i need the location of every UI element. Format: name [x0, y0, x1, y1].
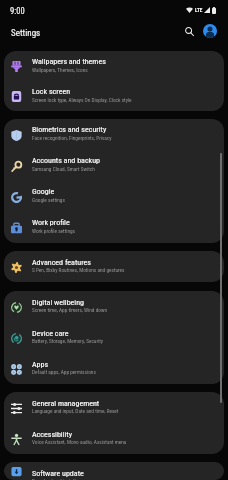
button[interactable]: Google [4, 181, 224, 212]
staticText: Advanced features [32, 258, 91, 267]
button[interactable]: Lock screen [4, 81, 224, 111]
button[interactable]: Advanced features [4, 251, 224, 282]
staticText: LTE [195, 7, 203, 13]
staticText: Google settings [32, 197, 65, 203]
staticText: Screen time, App timers, Wind down [32, 307, 108, 313]
staticText: Work profile settings [32, 228, 76, 234]
staticText: Accounts and backup [32, 156, 101, 165]
staticText: Face recognition, Fingerprints, Privacy [32, 135, 112, 141]
button[interactable]: Software update [4, 462, 224, 480]
button[interactable]: Apps [4, 353, 224, 384]
staticText: 9:00 [10, 6, 25, 16]
staticText: Apps [32, 360, 49, 369]
button[interactable]: Accessibility [4, 423, 224, 454]
staticText: Wallpapers, Themes, Icons [32, 67, 88, 73]
staticText: Software update [32, 469, 84, 478]
staticText: Voice Assistant, Mono audio, Assistant m… [32, 439, 127, 445]
staticText: Lock screen [32, 87, 71, 96]
staticText: Biometrics and security [32, 125, 107, 134]
staticText: Google [32, 187, 55, 196]
button[interactable]: Biometrics and security [4, 119, 224, 150]
staticText: Work profile [32, 218, 70, 227]
button[interactable]: Account [199, 20, 221, 42]
staticText: General management [32, 399, 100, 408]
staticText: Download and install [32, 478, 76, 480]
staticText: Language and input, Date and time, Reset [32, 408, 119, 414]
button[interactable]: General management [4, 392, 224, 423]
staticText: S Pen, Bixby Routines, Motions and gestu… [32, 267, 125, 273]
staticText: Samsung Cloud, Smart Switch [32, 166, 95, 172]
button[interactable]: Work profile [4, 212, 224, 243]
staticText: Settings [11, 28, 41, 39]
staticText: Accessibility [32, 430, 73, 439]
staticText: Screen lock type, Always On Display, Clo… [32, 97, 132, 103]
staticText: Default apps, App permissions [32, 369, 96, 375]
button[interactable]: Digital wellbeing [4, 291, 224, 322]
button[interactable]: Search [178, 20, 200, 42]
staticText: Wallpapers and themes [32, 57, 106, 66]
staticText: Battery, Storage, Memory, Security [32, 338, 104, 344]
staticText: Digital wellbeing [32, 298, 85, 307]
button[interactable]: Wallpapers and themes [4, 51, 224, 81]
button[interactable]: Accounts and backup [4, 150, 224, 181]
button[interactable]: Device care [4, 322, 224, 353]
staticText: Device care [32, 329, 69, 338]
